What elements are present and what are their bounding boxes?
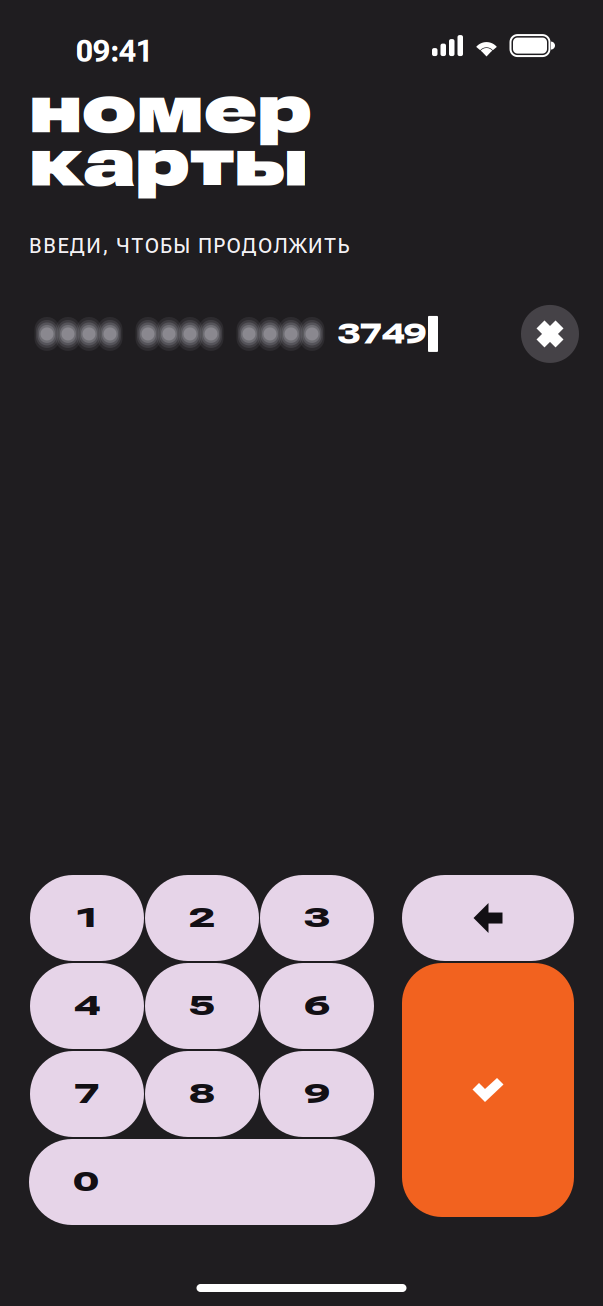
button[interactable]: 4 <box>30 963 144 1049</box>
staticText: 8 <box>191 1078 212 1110</box>
staticText: 1 <box>77 902 96 934</box>
button[interactable]: 7 <box>30 1051 144 1137</box>
staticText: 09:41 <box>76 34 153 69</box>
button[interactable]: 1 <box>30 875 144 961</box>
button[interactable]: Delete <box>402 875 574 961</box>
staticText: 4 <box>76 990 97 1022</box>
button[interactable]: Clear <box>521 305 579 363</box>
button[interactable]: 2 <box>145 875 259 961</box>
staticText: 9 <box>306 1078 327 1110</box>
button[interactable]: 0 <box>29 1139 375 1225</box>
button[interactable]: 6 <box>260 963 374 1049</box>
staticText: 7 <box>76 1078 97 1110</box>
staticText: ВВЕДИ, ЧТОБЫ ПРОДОЛЖИТЬ <box>29 234 350 258</box>
staticText: номер <box>29 68 312 149</box>
staticText: карты <box>29 121 308 202</box>
button[interactable]: 8 <box>145 1051 259 1137</box>
staticText: 3749 <box>338 317 426 350</box>
staticText: 2 <box>191 902 212 934</box>
button[interactable]: 9 <box>260 1051 374 1137</box>
staticText: 5 <box>191 990 212 1022</box>
staticText: 3 <box>306 902 327 934</box>
staticText: 0 <box>75 1166 96 1198</box>
button[interactable]: 3 <box>260 875 374 961</box>
staticText: 6 <box>306 990 327 1022</box>
button[interactable]: Confirm <box>402 963 574 1217</box>
button[interactable]: 5 <box>145 963 259 1049</box>
